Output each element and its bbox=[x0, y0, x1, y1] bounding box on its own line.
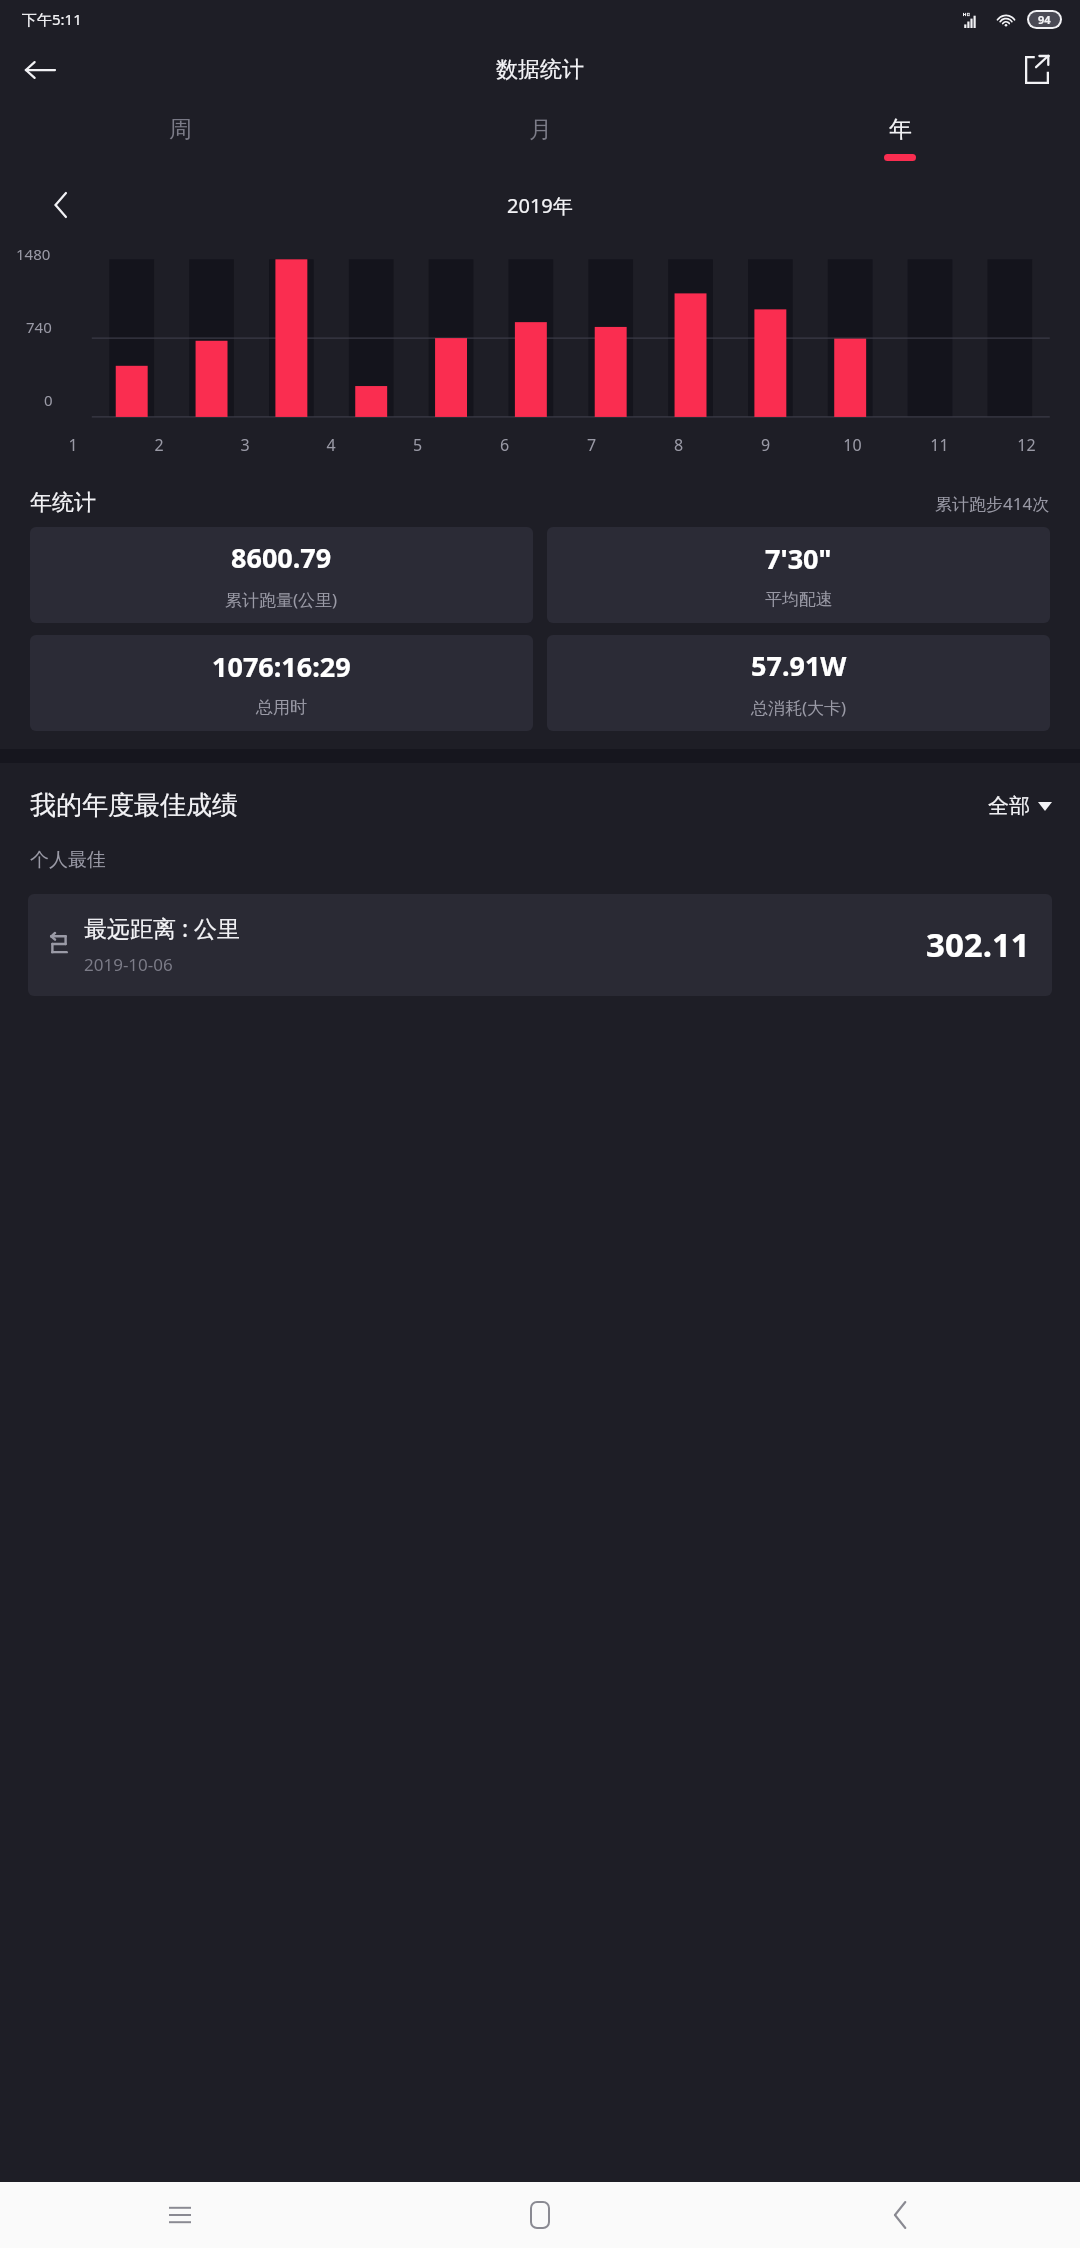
staticText: 7'30" bbox=[765, 540, 832, 577]
staticText: 2019-10-06 bbox=[84, 953, 173, 976]
button[interactable]: Back bbox=[12, 42, 68, 98]
staticText: 个人最佳 bbox=[30, 848, 106, 872]
button[interactable]: Back bbox=[720, 2182, 1080, 2248]
staticText: 0 bbox=[44, 390, 53, 410]
staticText: 数据统计 bbox=[496, 56, 584, 84]
staticText: 我的年度最佳成绩 bbox=[30, 789, 238, 822]
staticText: 平均配速 bbox=[765, 589, 833, 610]
staticText: 总消耗(大卡) bbox=[751, 696, 847, 719]
staticText: 1480 bbox=[16, 244, 51, 264]
staticText: 3 bbox=[202, 434, 288, 456]
staticText: 年 bbox=[889, 115, 912, 144]
staticText: 8 bbox=[635, 434, 722, 456]
button[interactable]: 全部 bbox=[988, 793, 1052, 819]
staticText: 6 bbox=[461, 434, 548, 456]
button[interactable]: 8600.79 bbox=[30, 527, 533, 623]
staticText: 8600.79 bbox=[231, 539, 332, 576]
staticText: 5 bbox=[374, 434, 461, 456]
staticText: 月 bbox=[529, 115, 552, 144]
staticText: 累计跑步414次 bbox=[935, 492, 1050, 515]
staticText: 2019年 bbox=[507, 192, 573, 219]
staticText: 累计跑量(公里) bbox=[225, 588, 338, 611]
staticText: 7 bbox=[548, 434, 635, 456]
button[interactable]: 年 bbox=[720, 102, 1080, 161]
button[interactable]: 1076:16:29 bbox=[30, 635, 533, 731]
button[interactable]: Recents bbox=[0, 2182, 360, 2248]
staticText: 12 bbox=[983, 434, 1070, 456]
staticText: 302.11 bbox=[926, 922, 1030, 967]
staticText: 740 bbox=[26, 317, 52, 337]
staticText: 11 bbox=[896, 434, 983, 456]
staticText: 57.91W bbox=[751, 647, 847, 684]
button[interactable]: 月 bbox=[360, 102, 720, 154]
button[interactable]: 57.91W bbox=[547, 635, 1050, 731]
staticText: 10 bbox=[809, 434, 896, 456]
staticText: 全部 bbox=[988, 793, 1030, 819]
staticText: 1 bbox=[30, 434, 116, 456]
button[interactable]: Home bbox=[360, 2182, 720, 2248]
staticText: 9 bbox=[722, 434, 809, 456]
staticText: 周 bbox=[169, 115, 192, 144]
staticText: 下午5:11 bbox=[22, 9, 82, 29]
staticText: 2 bbox=[116, 434, 202, 456]
button[interactable]: 最远距离 : 公里 bbox=[28, 894, 1052, 996]
staticText: 年统计 bbox=[30, 489, 96, 517]
staticText: 94 bbox=[1038, 12, 1051, 27]
staticText: 1076:16:29 bbox=[212, 648, 351, 685]
staticText: 4 bbox=[288, 434, 374, 456]
button[interactable]: Previous year bbox=[38, 183, 82, 227]
button[interactable]: Share bbox=[1010, 43, 1064, 97]
staticText: 总用时 bbox=[256, 697, 307, 718]
button[interactable]: 7'30" bbox=[547, 527, 1050, 623]
staticText: 最远距离 : 公里 bbox=[84, 912, 241, 943]
button[interactable]: 周 bbox=[0, 102, 360, 154]
